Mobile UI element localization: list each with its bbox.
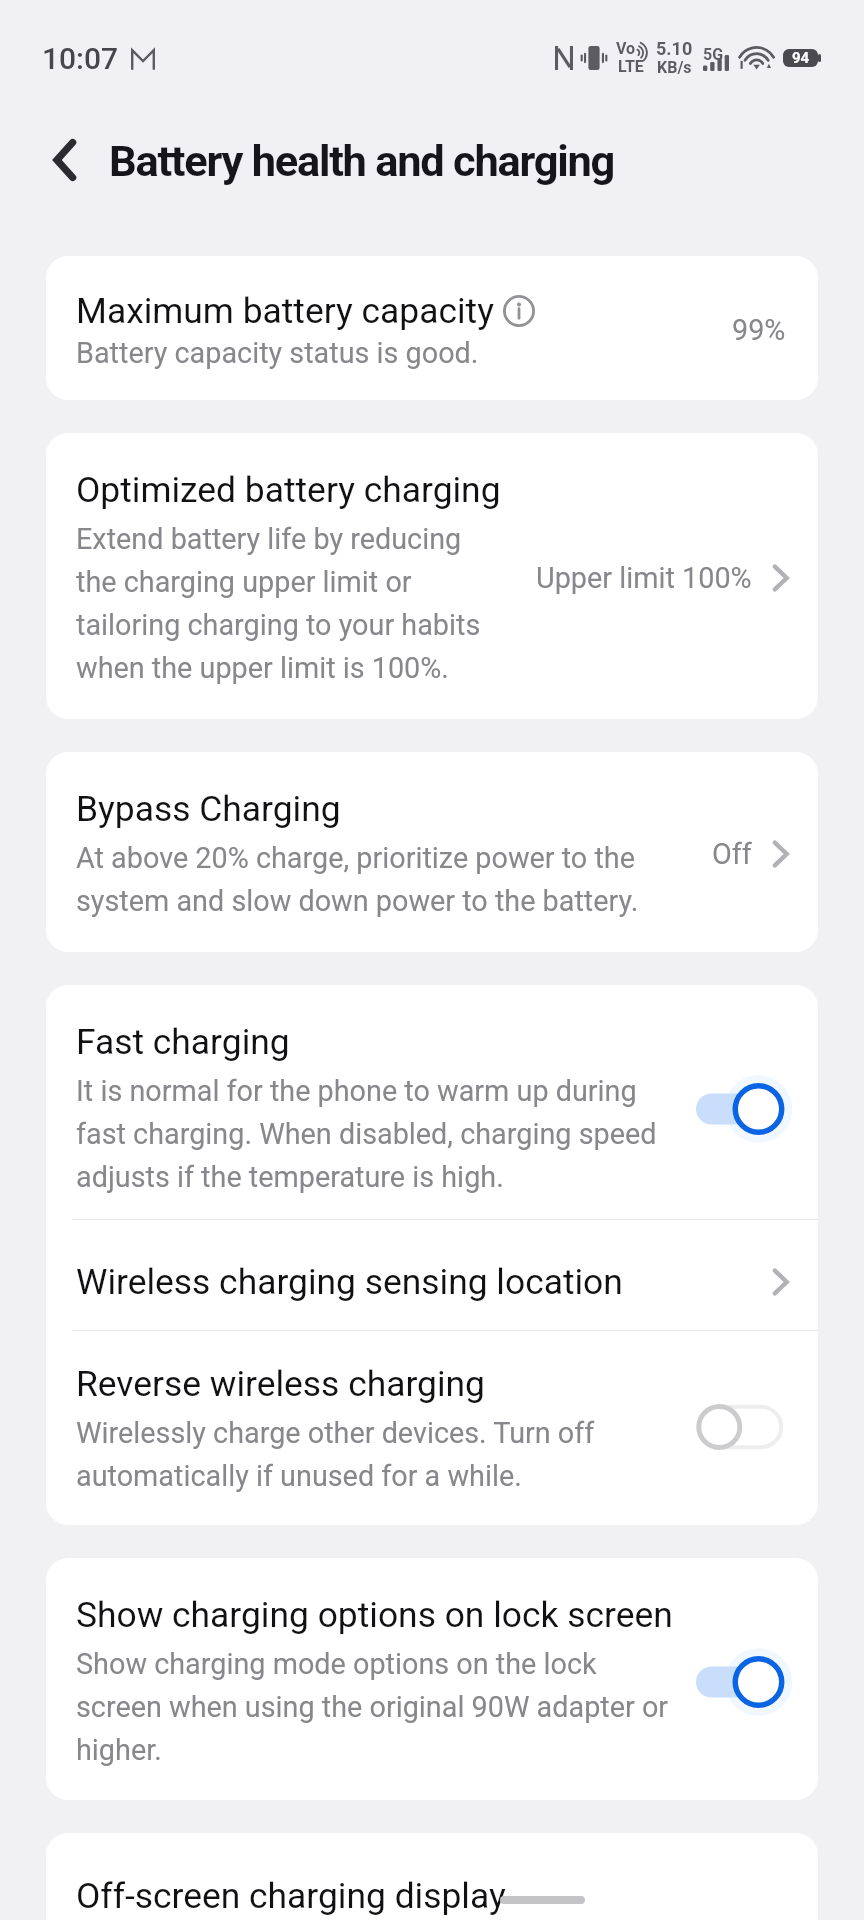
- staticText: Fast charging: [76, 1021, 290, 1063]
- staticText: Battery capacity status is good.: [76, 336, 479, 370]
- staticText: Off: [712, 837, 752, 871]
- button[interactable]: Back: [32, 126, 100, 194]
- staticText: 5.10: [656, 39, 693, 59]
- staticText: Reverse wireless charging: [76, 1363, 485, 1405]
- staticText: Maximum battery capacity: [76, 290, 494, 332]
- button[interactable]: Bypass Charging: [46, 752, 818, 952]
- button[interactable]: Switch on: [696, 1081, 786, 1137]
- staticText: Battery health and charging: [109, 135, 615, 186]
- staticText: Wirelessly charge other devices. Turn of…: [76, 1409, 656, 1495]
- button[interactable]: Fast charging: [46, 985, 818, 1219]
- staticText: Vo: [616, 40, 636, 58]
- button[interactable]: Optimized battery charging: [46, 433, 818, 719]
- staticText: LTE: [618, 58, 644, 76]
- button[interactable]: Reverse wireless charging: [46, 1331, 818, 1525]
- staticText: 5G: [703, 45, 724, 64]
- staticText: Extend battery life by reducing the char…: [76, 515, 486, 687]
- staticText: Bypass Charging: [76, 788, 806, 830]
- staticText: KB/s: [657, 59, 692, 77]
- staticText: 94: [792, 49, 810, 67]
- button[interactable]: Show charging options on lock screen: [46, 1558, 818, 1800]
- staticText: Optimized battery charging: [76, 469, 806, 511]
- staticText: 10:07: [42, 41, 119, 76]
- staticText: 99%: [732, 313, 786, 347]
- button[interactable]: Switch on: [696, 1654, 786, 1710]
- staticText: Off-screen charging display: [76, 1875, 506, 1917]
- staticText: At above 20% charge, prioritize power to…: [76, 834, 656, 920]
- button[interactable]: Maximum battery capacity: [46, 256, 818, 400]
- staticText: Upper limit 100%: [536, 561, 752, 595]
- staticText: Show charging options on lock screen: [76, 1594, 673, 1636]
- button[interactable]: Off-screen charging display: [46, 1833, 818, 1920]
- button[interactable]: Wireless charging sensing location: [46, 1220, 818, 1330]
- button[interactable]: Switch off: [696, 1401, 786, 1457]
- staticText: Show charging mode options on the lock s…: [76, 1640, 676, 1769]
- staticText: Wireless charging sensing location: [76, 1261, 754, 1303]
- staticText: It is normal for the phone to warm up du…: [76, 1067, 676, 1196]
